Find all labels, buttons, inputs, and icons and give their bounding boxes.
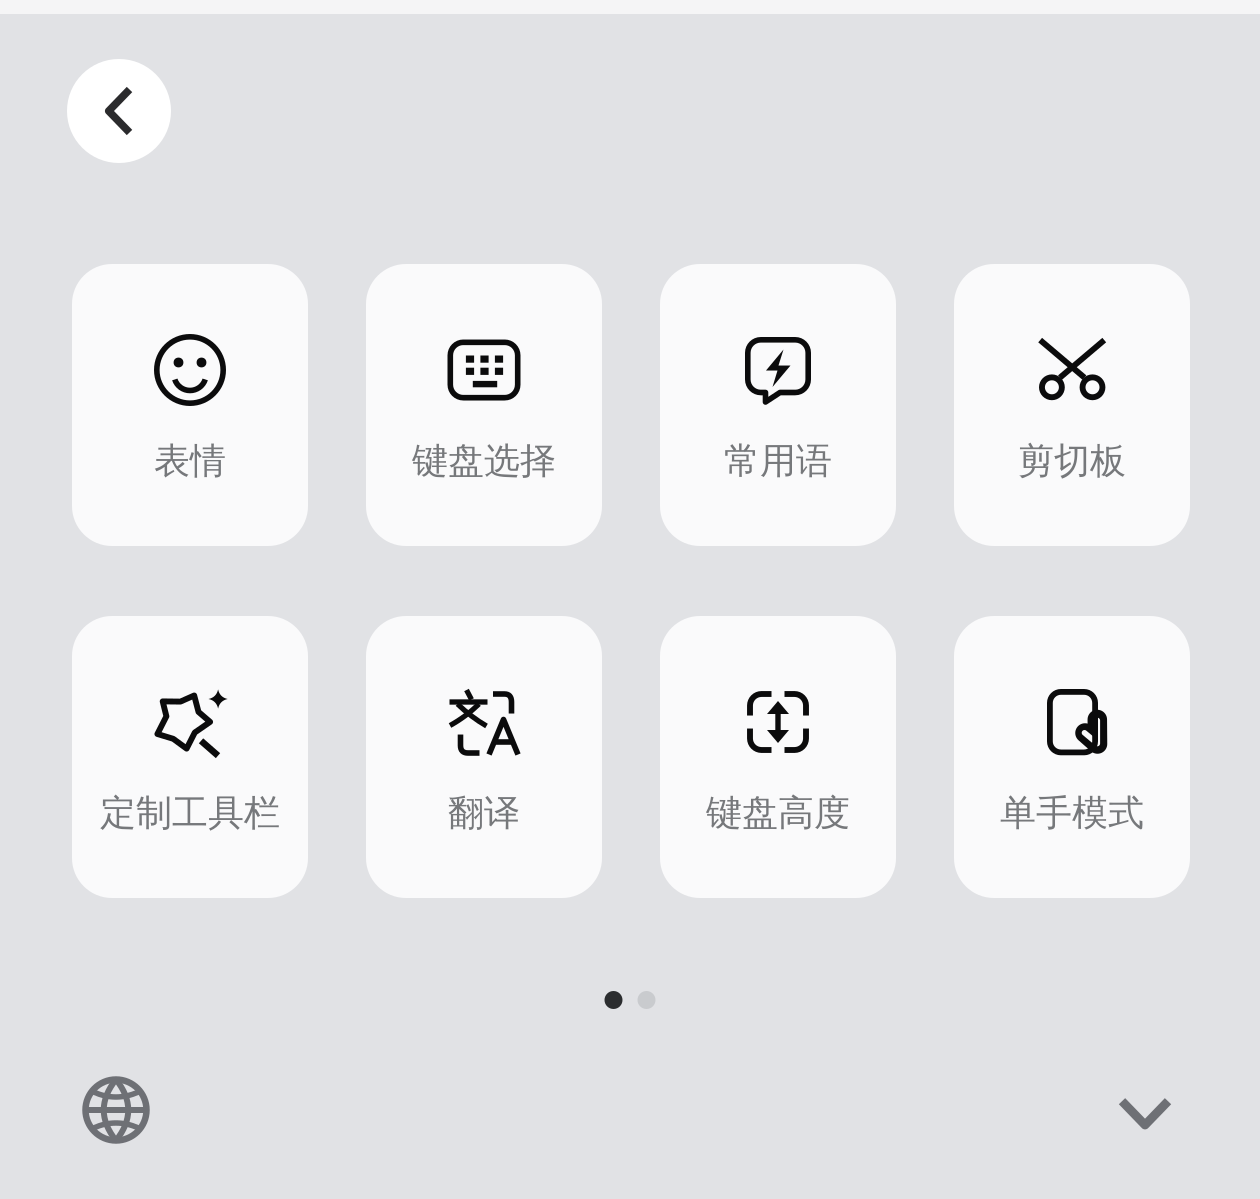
button[interactable]: 翻译	[366, 616, 602, 898]
button[interactable]: 表情	[72, 264, 308, 546]
staticText: 翻译	[448, 791, 520, 835]
button[interactable]: 常用语	[660, 264, 896, 546]
button[interactable]: 定制工具栏	[72, 616, 308, 898]
button[interactable]: Switch keyboard language	[66, 1060, 166, 1160]
button[interactable]: 键盘选择	[366, 264, 602, 546]
staticText: 剪切板	[1018, 439, 1126, 483]
button[interactable]: 单手模式	[954, 616, 1190, 898]
staticText: 键盘选择	[412, 439, 556, 483]
staticText: 单手模式	[1000, 791, 1144, 835]
button[interactable]: Back	[67, 59, 171, 163]
staticText: 键盘高度	[706, 791, 850, 835]
button[interactable]: Hide keyboard	[1095, 1063, 1195, 1163]
staticText: 常用语	[724, 439, 832, 483]
button[interactable]: 键盘高度	[660, 616, 896, 898]
staticText: 定制工具栏	[100, 791, 280, 835]
button[interactable]: 剪切板	[954, 264, 1190, 546]
staticText: 表情	[154, 439, 226, 483]
